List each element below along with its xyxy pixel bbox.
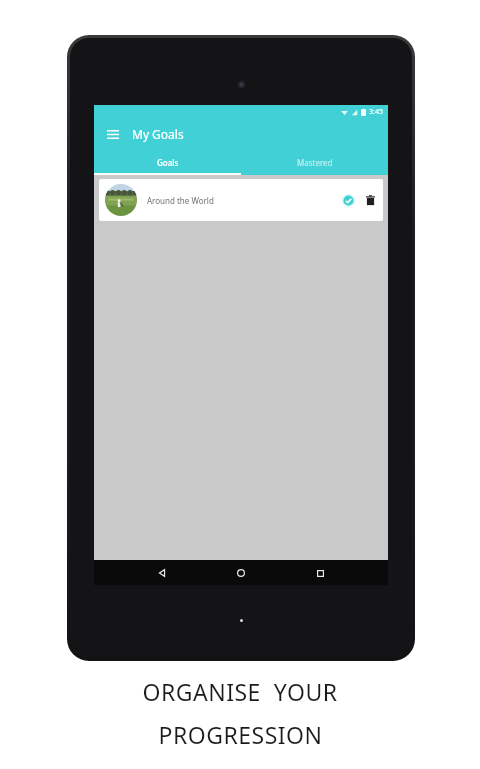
staticText: My Goals [132,126,184,142]
button[interactable]: Home [230,562,252,584]
button[interactable]: Mastered [241,149,388,175]
staticText: 3:45 [369,107,383,117]
button[interactable]: Delete goal [364,194,377,207]
staticText: Goals [157,157,179,168]
button[interactable]: Goals [94,149,241,175]
button[interactable]: Mark as mastered [342,194,355,207]
button[interactable]: Open navigation drawer [100,121,126,147]
staticText: Mastered [297,157,333,168]
button[interactable]: Recent apps [309,562,331,584]
button[interactable]: Back [151,562,173,584]
button[interactable]: Around the World [99,179,383,221]
staticText: ORGANISE YOUR [142,676,338,707]
staticText: PROGRESSION [158,719,323,750]
staticText: Around the World [147,195,214,206]
